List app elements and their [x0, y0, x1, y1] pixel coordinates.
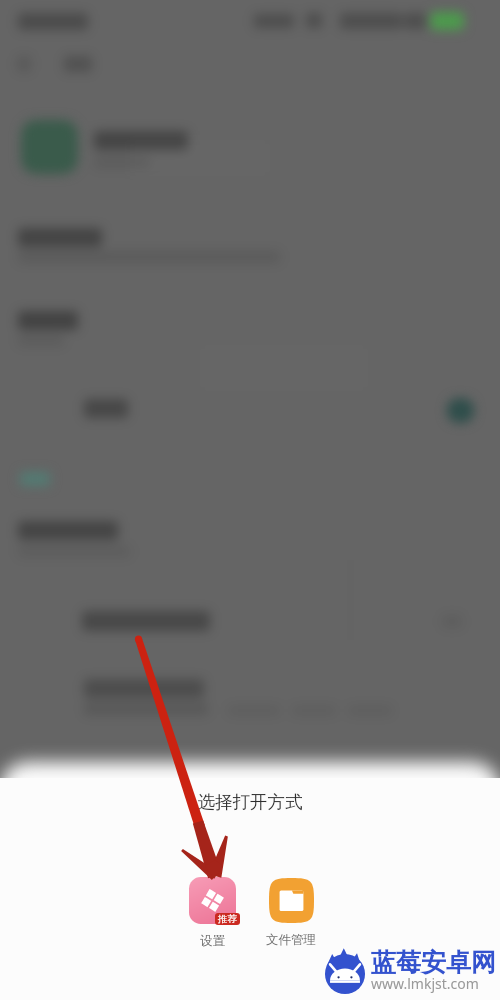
button[interactable]: 推荐: [186, 877, 238, 949]
staticText: 设置: [200, 933, 225, 949]
staticText: 推荐: [218, 913, 237, 925]
staticText: 蓝莓安卓网: [371, 947, 496, 978]
staticText: 文件管理: [266, 932, 316, 948]
button[interactable]: 文件管理: [265, 878, 317, 948]
button[interactable]: Dismiss: [0, 0, 500, 755]
staticText: www.lmkjst.com: [371, 974, 479, 993]
staticText: 选择打开方式: [0, 791, 500, 813]
